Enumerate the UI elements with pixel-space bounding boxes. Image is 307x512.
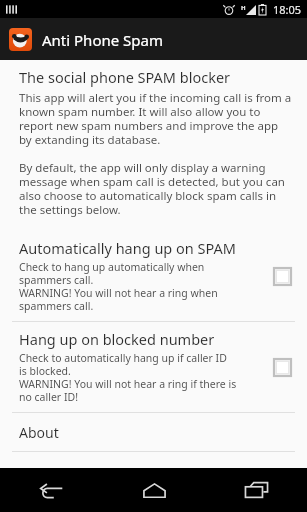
- staticText: This app will alert you if the incoming …: [19, 90, 293, 147]
- staticText: 18:05: [273, 2, 302, 17]
- button[interactable]: Toggle setting: [269, 354, 295, 380]
- staticText: The social phone SPAM blocker: [19, 67, 231, 87]
- button[interactable]: Hang up on blocked number: [0, 322, 307, 412]
- staticText: By default, the app will only display a …: [19, 160, 293, 217]
- button[interactable]: Toggle setting: [269, 263, 295, 289]
- staticText: H: [241, 4, 246, 12]
- staticText: Check to automatically hang up if caller…: [19, 351, 237, 404]
- button[interactable]: About: [0, 413, 307, 451]
- staticText: Check to hang up automatically when spam…: [19, 260, 218, 313]
- staticText: Hang up on blocked number: [19, 329, 215, 349]
- button[interactable]: Home: [103, 468, 205, 512]
- staticText: Anti Phone Spam: [42, 30, 163, 50]
- staticText: About: [19, 423, 59, 442]
- button[interactable]: Automatically hang up on SPAM: [0, 231, 307, 321]
- button[interactable]: Back: [0, 468, 103, 512]
- staticText: Automatically hang up on SPAM: [19, 238, 236, 258]
- button[interactable]: Recent apps: [205, 468, 307, 512]
